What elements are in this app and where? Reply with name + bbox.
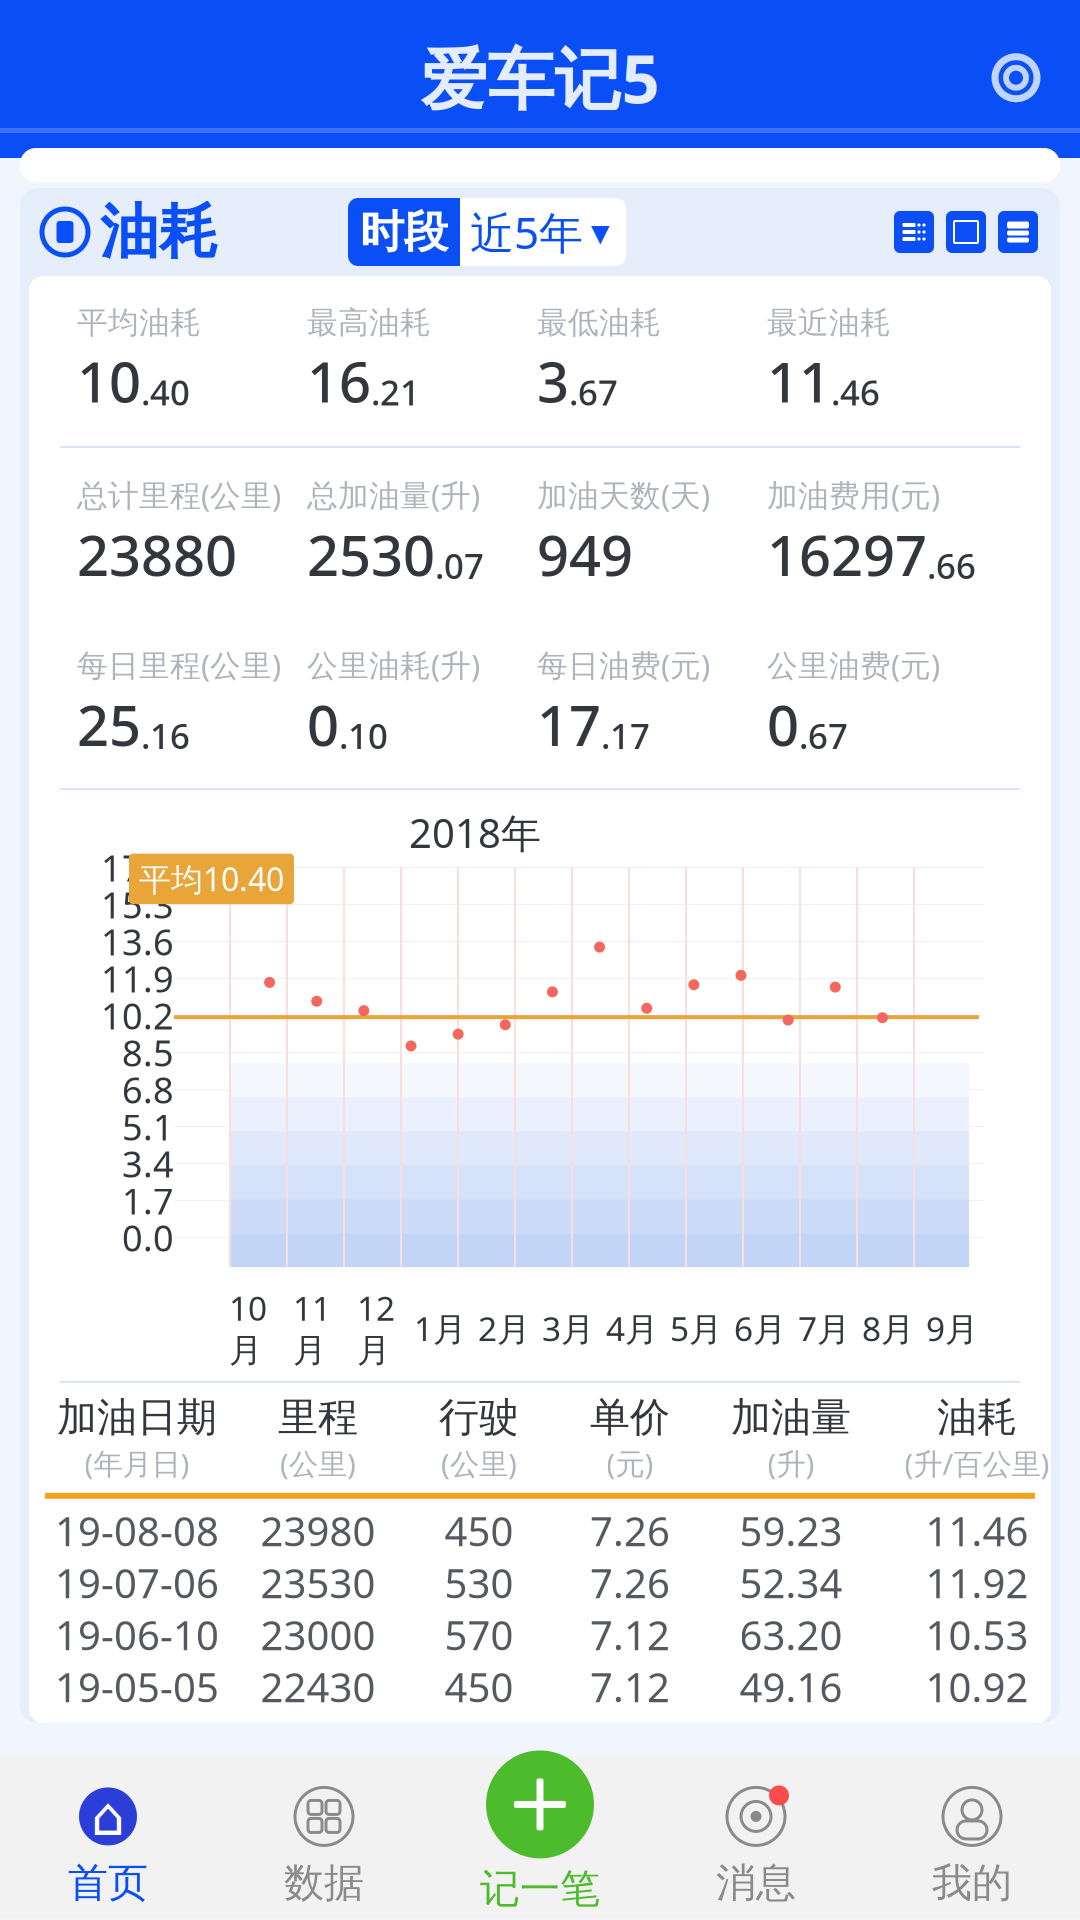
staticText: 23880: [77, 517, 237, 592]
staticText: .10: [339, 712, 388, 758]
staticText: 1月: [414, 1306, 466, 1350]
staticText: 加油日期: [57, 1393, 217, 1442]
button[interactable]: List view: [894, 211, 934, 253]
staticText: 爱车记5: [420, 33, 659, 122]
staticText: 22430: [260, 1660, 375, 1713]
staticText: 10月: [229, 1286, 267, 1371]
button[interactable]: 数据: [216, 1771, 432, 1920]
staticText: 450: [444, 1504, 513, 1557]
staticText: (升): [767, 1444, 814, 1483]
staticText: 16: [307, 344, 371, 418]
staticText: 行驶: [439, 1393, 519, 1442]
staticText: 0.0: [122, 1214, 174, 1261]
button[interactable]: 时段: [348, 198, 626, 266]
staticText: 我的: [932, 1858, 1012, 1907]
staticText: .16: [141, 712, 190, 758]
staticText: 15.3: [101, 881, 174, 928]
staticText: 450: [444, 1660, 513, 1713]
staticText: 加油天数(天): [537, 474, 710, 515]
staticText: 10.53: [925, 1608, 1028, 1661]
staticText: 3月: [542, 1306, 594, 1350]
staticText: 最近油耗: [767, 304, 891, 342]
staticText: 公里油费(元): [767, 644, 940, 685]
button[interactable]: Chart view: [946, 211, 986, 253]
button[interactable]: 19-05-05: [29, 1661, 1051, 1713]
staticText: 23530: [260, 1556, 375, 1609]
staticText: 7.12: [590, 1660, 670, 1713]
staticText: 3: [537, 344, 569, 418]
staticText: 8.5: [122, 1029, 174, 1076]
staticText: 2018年: [409, 806, 541, 859]
staticText: ▾: [591, 211, 610, 253]
button[interactable]: 油耗: [42, 196, 218, 268]
staticText: 7.26: [590, 1556, 670, 1609]
staticText: .67: [799, 712, 848, 758]
staticText: 3.4: [122, 1140, 174, 1187]
staticText: 23000: [260, 1608, 375, 1661]
staticText: .40: [141, 369, 190, 415]
button[interactable]: 19-07-06: [29, 1557, 1051, 1609]
button[interactable]: ⌂: [0, 1771, 216, 1920]
staticText: 2530: [307, 517, 435, 592]
staticText: 4月: [606, 1306, 658, 1350]
staticText: 公里油耗(升): [307, 644, 480, 685]
staticText: 19-05-05: [55, 1660, 219, 1713]
staticText: 2月: [478, 1306, 530, 1350]
staticText: 每日油费(元): [537, 644, 710, 685]
staticText: 消息: [716, 1858, 796, 1907]
staticText: 记一笔: [480, 1864, 600, 1913]
staticText: 6月: [734, 1306, 786, 1350]
staticText: .46: [831, 369, 880, 415]
staticText: 13.6: [101, 918, 174, 965]
button[interactable]: 19-06-10: [29, 1609, 1051, 1661]
staticText: 6.8: [122, 1066, 174, 1113]
staticText: 单价: [590, 1393, 670, 1442]
staticText: 5月: [670, 1306, 722, 1350]
staticText: .21: [371, 369, 420, 415]
staticText: 最低油耗: [537, 304, 661, 342]
staticText: 12月: [357, 1286, 395, 1371]
staticText: 里程: [278, 1393, 358, 1442]
staticText: 总计里程(公里): [77, 474, 281, 515]
staticText: 7月: [798, 1306, 850, 1350]
staticText: 10.2: [101, 992, 174, 1039]
button[interactable]: 消息: [648, 1771, 864, 1920]
staticText: (升/百公里): [904, 1444, 1049, 1483]
staticText: 11.92: [925, 1556, 1028, 1609]
staticText: 25: [77, 687, 141, 762]
staticText: 11: [767, 344, 831, 418]
staticText: 949: [537, 517, 633, 592]
staticText: 17.0: [101, 844, 174, 891]
staticText: .17: [601, 712, 650, 758]
staticText: 7.26: [590, 1504, 670, 1557]
staticText: 49.16: [739, 1660, 842, 1713]
staticText: 59.23: [739, 1504, 842, 1557]
staticText: 11.9: [101, 955, 174, 1002]
button[interactable]: 记一笔: [432, 1771, 648, 1920]
staticText: 8月: [862, 1306, 914, 1350]
staticText: 570: [444, 1608, 513, 1661]
staticText: 16297: [767, 517, 927, 592]
button[interactable]: 我的: [864, 1771, 1080, 1920]
staticText: 总加油量(升): [307, 474, 480, 515]
staticText: 11.46: [925, 1504, 1028, 1557]
button[interactable]: Settings: [976, 38, 1056, 118]
staticText: .67: [569, 369, 618, 415]
staticText: (元): [606, 1444, 653, 1483]
staticText: 1.7: [122, 1177, 174, 1224]
staticText: 530: [444, 1556, 513, 1609]
staticText: 数据: [284, 1858, 364, 1907]
staticText: 每日里程(公里): [77, 644, 281, 685]
staticText: 平均10.40: [139, 858, 284, 900]
staticText: 7.12: [590, 1608, 670, 1661]
staticText: 时段: [360, 205, 448, 259]
staticText: 加油费用(元): [767, 474, 940, 515]
staticText: (公里): [280, 1444, 356, 1483]
staticText: 63.20: [739, 1608, 842, 1661]
button[interactable]: Layers: [998, 211, 1038, 253]
button[interactable]: 19-08-08: [29, 1505, 1051, 1557]
staticText: 17: [537, 687, 601, 762]
staticText: .07: [435, 542, 484, 588]
staticText: 5.1: [122, 1103, 174, 1150]
staticText: (年月日): [84, 1444, 189, 1483]
